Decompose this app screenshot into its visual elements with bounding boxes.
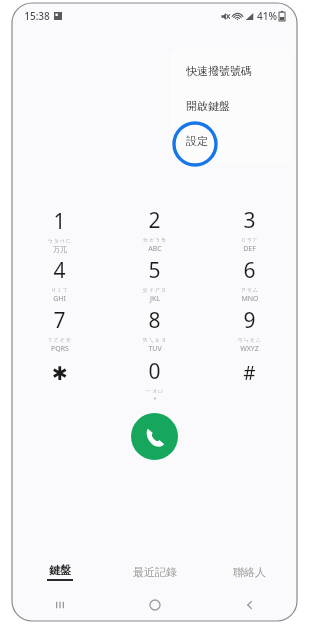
staticText: WXYZ	[240, 344, 259, 354]
button[interactable]: 4	[12, 255, 107, 305]
staticText: ABC	[148, 244, 162, 254]
staticText: ㄞㄟㄠㄡ	[142, 336, 167, 344]
button[interactable]: 開啟鍵盤	[170, 88, 292, 123]
button[interactable]: Call	[131, 413, 178, 460]
staticText: 1	[53, 207, 66, 236]
staticText: 0	[148, 357, 161, 386]
staticText: ✱	[52, 362, 68, 384]
button[interactable]: 快速撥號號碼	[170, 53, 292, 88]
staticText: 設定	[186, 134, 208, 148]
staticText: ㄍㄎㄏ	[240, 236, 259, 244]
staticText: ㄧㄨㄩ	[145, 387, 164, 395]
button[interactable]: 聯絡人	[202, 555, 297, 589]
staticText: 快速撥號號碼	[186, 64, 252, 78]
button[interactable]: Recents	[12, 589, 107, 621]
staticText: 開啟鍵盤	[186, 99, 230, 113]
button[interactable]: 設定	[170, 123, 292, 158]
button[interactable]: 5	[107, 255, 202, 305]
staticText: 7	[53, 306, 66, 335]
staticText: ㄅㄆㄇㄈ	[47, 237, 72, 245]
staticText: GHI	[53, 294, 66, 304]
staticText: 最近記錄	[133, 565, 177, 579]
staticText: ㄗㄘㄙ	[240, 286, 259, 294]
staticText: 2	[148, 206, 161, 235]
staticText: ㄓㄔㄕㄖ	[142, 286, 167, 294]
button[interactable]: 1	[12, 205, 107, 255]
staticText: ㄪㄫ	[53, 245, 67, 254]
staticText: TUV	[148, 344, 162, 354]
button[interactable]: 7	[12, 305, 107, 355]
staticText: 41%	[257, 9, 277, 23]
button[interactable]: #	[202, 355, 297, 405]
staticText: ㄢㄣㄤㄥ	[237, 336, 262, 344]
button[interactable]: Back	[202, 589, 297, 621]
button[interactable]: 9	[202, 305, 297, 355]
button[interactable]: 6	[202, 255, 297, 305]
staticText: +	[153, 395, 157, 403]
button[interactable]: 0	[107, 355, 202, 405]
staticText: 3	[243, 206, 256, 235]
button[interactable]: 最近記錄	[107, 555, 202, 589]
staticText: 8	[148, 306, 161, 335]
staticText: 15:38	[24, 9, 50, 23]
staticText: 6	[243, 256, 256, 285]
staticText: 5	[148, 256, 161, 285]
staticText: #	[243, 360, 256, 386]
button[interactable]: 3	[202, 205, 297, 255]
staticText: MNO	[241, 294, 259, 304]
button[interactable]: 鍵盤	[12, 555, 107, 589]
staticText: ㄚㄛㄜㄝ	[47, 336, 72, 344]
staticText: 9	[243, 306, 256, 335]
button[interactable]: Home	[107, 589, 202, 621]
staticText: PQRS	[51, 344, 69, 354]
button[interactable]: ✱	[12, 355, 107, 405]
staticText: DEF	[243, 244, 256, 254]
button[interactable]: 8	[107, 305, 202, 355]
staticText: 鍵盤	[49, 563, 71, 577]
staticText: 聯絡人	[233, 565, 266, 579]
staticText: ㄉㄊㄋㄌ	[142, 236, 167, 244]
staticText: 4	[53, 256, 66, 285]
staticText: ㄐㄑㄒ	[50, 286, 69, 294]
staticText: JKL	[150, 294, 160, 304]
button[interactable]: 2	[107, 205, 202, 255]
